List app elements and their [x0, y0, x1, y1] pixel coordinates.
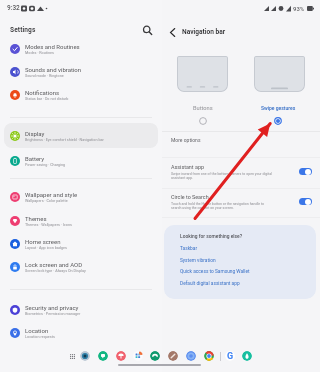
button[interactable]: Wallpaper and style — [4, 184, 158, 209]
staticText: Themes · Wallpapers · Icons — [25, 223, 72, 227]
staticText: Taskbar — [180, 246, 198, 252]
staticText: Swipe gestures — [261, 105, 296, 111]
button[interactable]: Messages — [98, 351, 108, 361]
staticText: Default digital assistant app — [180, 281, 240, 287]
staticText: 93% — [293, 5, 305, 12]
button[interactable]: Assistant app — [162, 157, 320, 186]
button[interactable]: Apps — [66, 350, 78, 362]
button[interactable]: Security and privacy — [4, 297, 158, 322]
staticText: Display — [25, 130, 45, 137]
button[interactable]: Swipe gestures — [272, 115, 284, 127]
staticText: Security and privacy — [25, 304, 79, 311]
staticText: Modes and Routines — [25, 43, 80, 50]
staticText: More options — [171, 137, 201, 143]
staticText: Settings — [10, 26, 36, 34]
button[interactable]: Buttons — [173, 105, 233, 112]
button[interactable]: Default digital assistant app — [175, 278, 245, 289]
staticText: Quick access to Samsung Wallet — [180, 269, 250, 275]
staticText: Notifications — [25, 89, 60, 96]
staticText: Power saving · Charging — [25, 163, 66, 167]
button[interactable] — [177, 56, 228, 92]
staticText: Layout · App icon badges — [25, 246, 67, 250]
button[interactable]: Sounds and vibration — [4, 59, 158, 84]
staticText: Swipe inward from one of the bottom corn… — [171, 172, 272, 176]
staticText: Touch and hold the Home button or the na… — [171, 202, 265, 206]
staticText: G — [227, 351, 234, 361]
button[interactable]: Location — [4, 320, 158, 345]
staticText: Brightness · Eye comfort shield · Naviga… — [25, 138, 104, 142]
button[interactable]: Browser — [186, 351, 196, 361]
button[interactable]: Lock screen and AOD — [4, 254, 158, 279]
button[interactable]: Display — [4, 123, 158, 148]
button[interactable]: Paint — [168, 351, 178, 361]
staticText: Home screen — [25, 238, 61, 245]
button[interactable]: Chrome — [204, 351, 214, 361]
button[interactable]: Quick access to Samsung Wallet — [175, 266, 255, 277]
button[interactable]: Battery — [4, 148, 158, 173]
staticText: search using the content on your screen. — [171, 206, 234, 210]
button[interactable]: Modes and Routines — [4, 36, 158, 61]
button[interactable]: Back — [164, 24, 181, 41]
button[interactable]: Buttons — [197, 115, 209, 127]
button[interactable]: Search — [139, 23, 155, 37]
staticText: Lock screen and AOD — [25, 261, 83, 268]
button[interactable]: Home screen — [4, 231, 158, 256]
button[interactable]: Circle to Search — [162, 187, 320, 216]
staticText: System vibration — [180, 258, 216, 264]
staticText: 9:32 — [7, 4, 20, 12]
button[interactable]: Swipe gestures — [248, 105, 308, 111]
staticText: Buttons — [193, 105, 213, 112]
staticText: Themes — [25, 215, 47, 222]
staticText: Circle to Search — [171, 194, 209, 200]
staticText: Biometrics · Permission manager — [25, 312, 81, 316]
staticText: Location — [25, 327, 49, 334]
staticText: Navigation bar — [182, 28, 226, 36]
button[interactable]: Shop — [116, 351, 126, 361]
button[interactable] — [254, 56, 305, 92]
staticText: Sound mode · Ringtone — [25, 74, 64, 78]
staticText: Assistant app — [171, 164, 204, 170]
button[interactable]: Assistant — [242, 351, 252, 361]
staticText: Sounds and vibration — [25, 66, 82, 73]
staticText: Modes · Routines — [25, 51, 54, 55]
button[interactable]: Themes — [4, 208, 158, 233]
button[interactable]: Game — [150, 351, 160, 361]
staticText: Battery — [25, 155, 45, 162]
button[interactable]: Apps — [133, 351, 143, 361]
button[interactable]: Google — [225, 351, 235, 361]
button[interactable]: System vibration — [175, 255, 221, 266]
staticText: assistant app. — [171, 176, 193, 180]
staticText: Screen lock type · Always On Display — [25, 269, 86, 273]
staticText: Wallpapers · Color palette — [25, 199, 68, 203]
staticText: Wallpaper and style — [25, 191, 78, 198]
staticText: Status bar · Do not disturb — [25, 97, 69, 101]
staticText: Looking for something else? — [180, 233, 243, 239]
button[interactable]: Taskbar — [175, 243, 203, 254]
staticText: Location requests — [25, 335, 55, 339]
button[interactable]: Notifications — [4, 82, 158, 107]
button[interactable]: Camera — [80, 351, 90, 361]
